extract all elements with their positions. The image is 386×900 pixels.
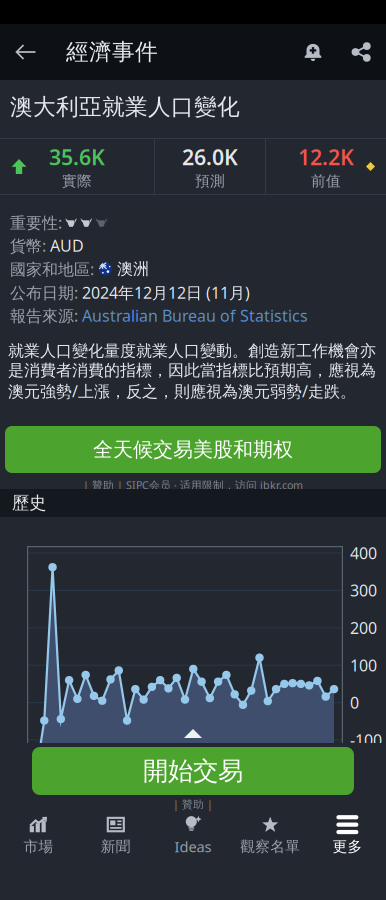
staticText: 就業人口變化量度就業人口變動。創造新工作機會亦是消費者消費的指標，因此當指標比預…	[8, 341, 376, 402]
staticText: 實際	[62, 172, 92, 190]
button[interactable]: Ideas	[154, 811, 232, 861]
staticText: 12.2K	[298, 143, 354, 171]
staticText: 澳洲	[117, 259, 149, 279]
staticText: 貨幣:	[10, 235, 46, 256]
button[interactable]: Back	[0, 24, 52, 80]
button[interactable]: 全天候交易美股和期权	[5, 426, 381, 473]
button[interactable]: Add alert	[290, 24, 336, 80]
staticText: 0	[350, 692, 359, 713]
button[interactable]: 市場	[0, 811, 77, 861]
staticText: 預測	[195, 172, 225, 190]
staticText: 報告來源:	[10, 305, 78, 326]
staticText: 前值	[311, 172, 341, 190]
staticText: 400	[350, 542, 377, 564]
staticText: 200	[350, 617, 377, 638]
staticText: 更多	[332, 838, 362, 856]
staticText: Australian Bureau of Statistics	[82, 305, 308, 326]
staticText: 全天候交易美股和期权	[93, 437, 293, 462]
staticText: 26.0K	[182, 143, 238, 171]
staticText: | 贊助 | SIPC会员 · 适用限制，访问 ibkr.com	[83, 478, 303, 492]
staticText: 歷史	[12, 492, 46, 514]
button[interactable]: 更多	[309, 811, 386, 861]
staticText: 國家和地區:	[10, 258, 94, 280]
staticText: -100	[350, 729, 382, 751]
button[interactable]: 開始交易	[32, 747, 354, 795]
staticText: 市場	[24, 838, 54, 856]
staticText: 2024年12月12日 (11月)	[82, 282, 250, 303]
staticText: 公布日期:	[10, 282, 78, 303]
staticText: 100	[350, 655, 377, 676]
staticText: 觀察名單	[240, 838, 300, 856]
staticText: 經濟事件	[66, 38, 158, 66]
staticText: | 贊助 |	[173, 797, 213, 811]
staticText: 35.6K	[49, 143, 105, 171]
staticText: 澳大利亞就業人口變化	[10, 93, 240, 121]
staticText: AUD	[50, 235, 84, 256]
staticText: 300	[350, 580, 377, 601]
button[interactable]: Share	[336, 24, 386, 80]
staticText: 開始交易	[143, 755, 243, 786]
button[interactable]: 新聞	[77, 811, 154, 861]
button[interactable]: Australian Bureau of Statistics	[82, 305, 308, 326]
staticText: 新聞	[101, 838, 131, 856]
button[interactable]: 觀察名單	[232, 811, 309, 861]
staticText: 重要性:	[10, 212, 62, 233]
staticText: Ideas	[174, 837, 211, 856]
